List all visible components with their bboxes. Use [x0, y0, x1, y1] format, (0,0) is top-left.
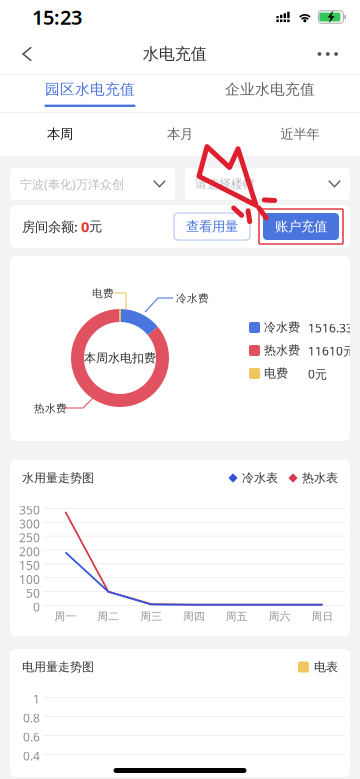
staticText: 周四: [183, 610, 205, 623]
staticText: 本周水电扣费: [84, 351, 156, 365]
staticText: 本周: [47, 126, 73, 142]
staticText: 宁波(奉化)万洋众创: [20, 176, 124, 192]
staticText: 0: [33, 599, 40, 615]
staticText: 热水表: [302, 471, 338, 485]
staticText: 11610元: [308, 343, 355, 359]
staticText: 电费: [92, 287, 114, 300]
button[interactable]: 查看用量: [174, 213, 250, 240]
button[interactable]: 请选择楼幢: [185, 168, 350, 200]
staticText: 50: [26, 585, 40, 601]
button[interactable]: 返回: [10, 35, 44, 73]
staticText: 周日: [312, 610, 334, 623]
staticText: 电费: [264, 366, 288, 381]
button[interactable]: 更多: [306, 35, 350, 73]
staticText: 周一: [54, 610, 76, 623]
button[interactable]: 近半年: [240, 112, 360, 156]
staticText: 账户充值: [275, 218, 327, 235]
staticText: 0.6: [23, 729, 40, 745]
button[interactable]: 园区水电充值: [0, 74, 180, 112]
staticText: 冷水费: [264, 320, 300, 335]
button[interactable]: 企业水电充值: [180, 74, 360, 112]
button[interactable]: 本周: [0, 112, 120, 156]
staticText: 热水费: [264, 343, 300, 358]
staticText: 请选择楼幢: [195, 177, 255, 191]
staticText: 0: [81, 217, 89, 236]
staticText: 电用量走势图: [22, 660, 94, 674]
staticText: 企业水电充值: [225, 80, 315, 98]
staticText: 周六: [269, 610, 291, 623]
staticText: 200: [19, 544, 40, 559]
staticText: 0.8: [23, 710, 40, 726]
staticText: 周三: [140, 610, 162, 623]
staticText: 250: [19, 530, 40, 546]
staticText: 0元: [308, 366, 327, 382]
staticText: 电表: [314, 660, 338, 674]
staticText: 冷水表: [242, 471, 278, 485]
button[interactable]: 账户充值: [259, 209, 343, 244]
staticText: 周二: [97, 610, 119, 623]
staticText: 15:23: [32, 4, 82, 30]
button[interactable]: 本月: [120, 112, 240, 156]
staticText: 1: [33, 691, 40, 707]
staticText: 周五: [226, 610, 248, 623]
staticText: 水电充值: [143, 44, 207, 64]
staticText: 350: [19, 502, 40, 518]
staticText: 近半年: [280, 126, 319, 142]
button[interactable]: 宁波(奉化)万洋众创: [10, 168, 175, 200]
staticText: 冷水费: [176, 292, 209, 305]
staticText: 0.4: [23, 748, 40, 764]
staticText: 100: [19, 571, 40, 587]
staticText: 房间余额:: [22, 218, 81, 235]
staticText: 元: [89, 218, 102, 235]
staticText: 本月: [167, 126, 193, 142]
staticText: 园区水电充值: [45, 80, 135, 98]
staticText: 1516.33元: [308, 320, 360, 336]
staticText: 150: [19, 557, 40, 573]
staticText: 水用量走势图: [22, 471, 94, 485]
staticText: 查看用量: [186, 218, 238, 235]
staticText: 热水费: [34, 402, 67, 415]
staticText: 300: [19, 516, 40, 532]
